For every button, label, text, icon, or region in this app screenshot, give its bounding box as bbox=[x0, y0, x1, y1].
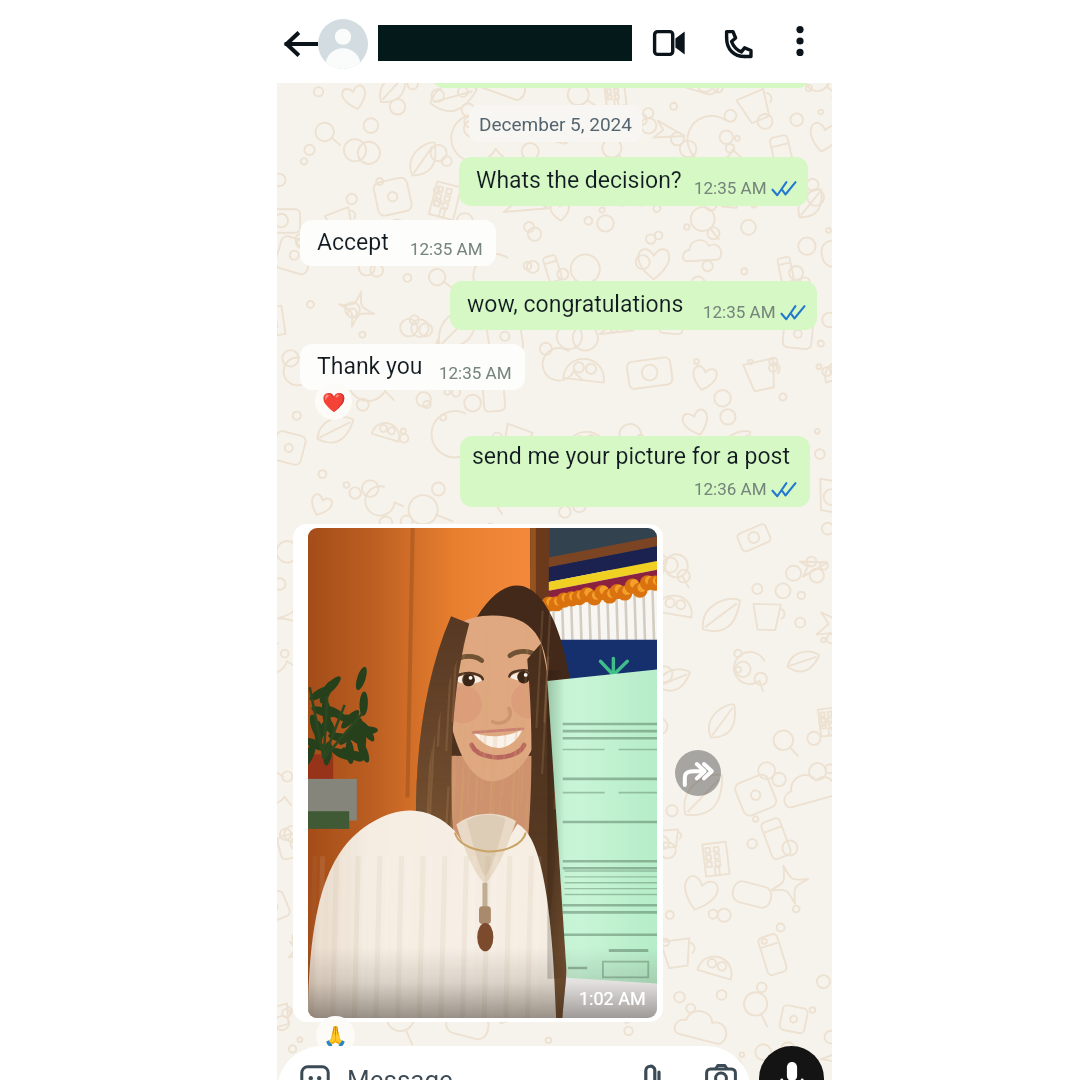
button[interactable]: Folded hands reaction bbox=[316, 1016, 355, 1055]
button[interactable]: Heart reaction bbox=[315, 383, 352, 420]
staticText: Accept bbox=[317, 229, 389, 256]
button[interactable]: Accept bbox=[300, 220, 496, 266]
staticText: Message bbox=[347, 1065, 453, 1080]
button[interactable]: Camera bbox=[699, 1056, 743, 1080]
button[interactable]: Whats the decision? bbox=[459, 157, 808, 206]
button[interactable]: Profile photo bbox=[318, 19, 368, 69]
button[interactable]: December 5, 2024 bbox=[469, 105, 642, 142]
staticText: ❤️ bbox=[322, 391, 346, 413]
staticText: Thank you bbox=[317, 353, 423, 380]
button[interactable]: Thank you bbox=[300, 344, 525, 390]
button[interactable]: Voice call bbox=[716, 21, 760, 65]
staticText: 12:36 AM bbox=[694, 479, 767, 499]
staticText: 1:02 AM bbox=[579, 988, 646, 1009]
staticText: 12:35 AM bbox=[439, 363, 512, 383]
button[interactable]: More options bbox=[780, 21, 820, 61]
button[interactable] bbox=[432, 83, 810, 88]
staticText: Whats the decision? bbox=[476, 167, 682, 194]
button[interactable]: Record voice message bbox=[759, 1046, 824, 1080]
button[interactable]: send me your picture for a post bbox=[460, 436, 810, 507]
staticText: 🙏 bbox=[323, 1024, 348, 1047]
staticText: wow, congratulations bbox=[467, 291, 684, 318]
button[interactable]: wow, congratulations bbox=[450, 281, 817, 330]
staticText: 12:35 AM bbox=[703, 302, 776, 322]
staticText: December 5, 2024 bbox=[479, 113, 632, 135]
staticText: send me your picture for a post bbox=[472, 443, 791, 470]
staticText: 12:35 AM bbox=[694, 178, 767, 198]
button[interactable]: Photo message, 1:02 AM bbox=[293, 524, 663, 1022]
button[interactable]: Video call bbox=[647, 21, 691, 65]
button[interactable]: Forward bbox=[675, 750, 721, 796]
button[interactable]: Back bbox=[283, 26, 319, 62]
staticText: 12:35 AM bbox=[410, 239, 483, 259]
button[interactable]: Attach bbox=[631, 1056, 675, 1080]
button[interactable]: Message bbox=[277, 1046, 751, 1080]
